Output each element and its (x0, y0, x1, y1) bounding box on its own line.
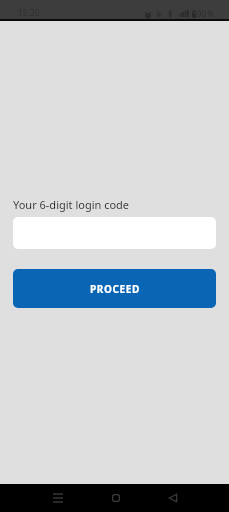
button[interactable]: PROCEED (13, 269, 216, 308)
button[interactable]: Back (144, 484, 201, 512)
staticText: PROCEED (90, 282, 140, 296)
staticText: Your 6-digit login code (13, 197, 130, 212)
staticText: 90 % (197, 8, 215, 19)
button[interactable]: Recent apps (29, 484, 87, 512)
button[interactable]: Home (87, 484, 144, 512)
staticText: 15:20 (18, 7, 40, 19)
